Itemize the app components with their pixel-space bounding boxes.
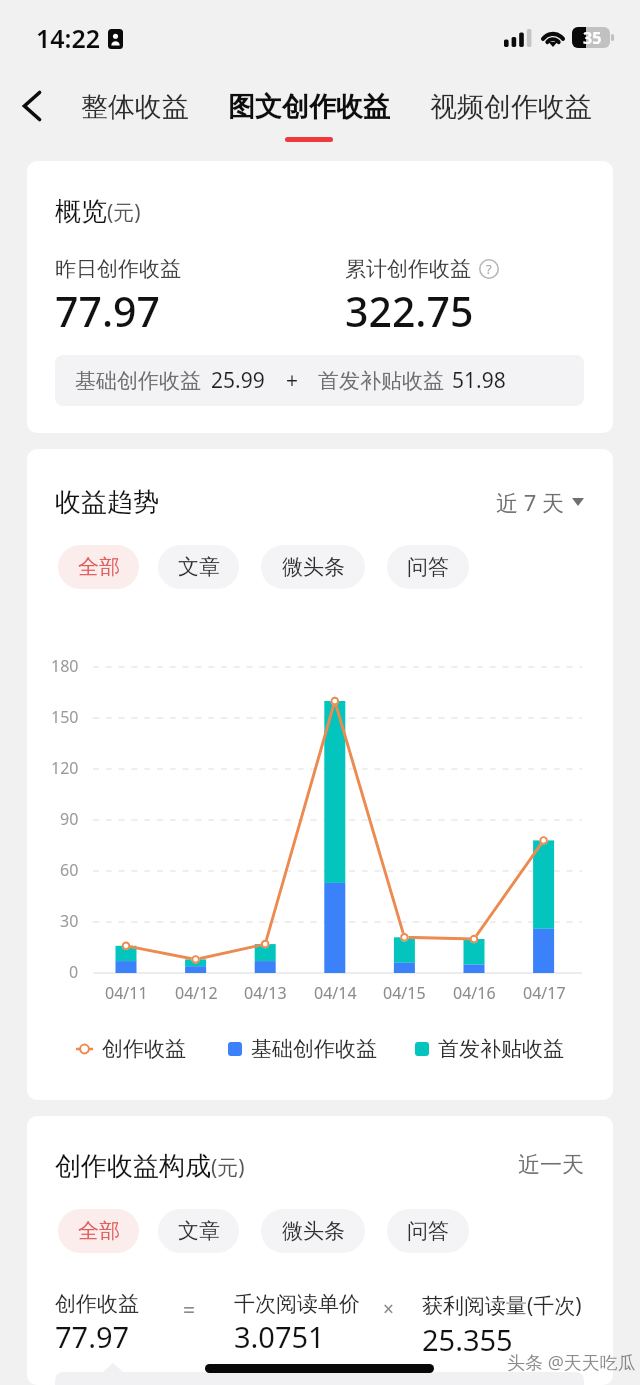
- staticText: 微头条: [282, 554, 345, 580]
- staticText: 问答: [407, 1218, 449, 1244]
- button[interactable]: 视频创作收益: [424, 90, 598, 124]
- staticText: 全部: [78, 1218, 120, 1244]
- staticText: 180: [51, 655, 79, 677]
- button[interactable]: 微头条: [261, 1209, 365, 1253]
- staticText: 概览: [55, 195, 107, 228]
- staticText: 04/12: [175, 982, 218, 1004]
- button[interactable]: 问答: [387, 545, 469, 589]
- staticText: 30: [60, 910, 79, 932]
- staticText: 文章: [178, 554, 220, 580]
- staticText: 首发补贴收益: [318, 368, 444, 394]
- button[interactable]: 基础创作收益: [55, 355, 584, 406]
- button[interactable]: 文章: [158, 1209, 239, 1253]
- staticText: (元): [211, 1153, 245, 1182]
- staticText: 150: [51, 706, 79, 728]
- button[interactable]: 全部: [58, 545, 139, 589]
- button[interactable]: 问答: [387, 1209, 469, 1253]
- button[interactable]: 全部: [58, 1209, 139, 1253]
- staticText: 35: [583, 27, 602, 48]
- staticText: 04/14: [314, 982, 357, 1004]
- staticText: 04/17: [523, 982, 566, 1004]
- staticText: 04/15: [383, 982, 426, 1004]
- staticText: 120: [51, 757, 79, 779]
- staticText: 收益趋势: [55, 486, 159, 519]
- button[interactable]: 说明: [479, 259, 499, 279]
- staticText: 77.97: [55, 283, 160, 339]
- staticText: 昨日创作收益: [55, 256, 181, 282]
- staticText: ×: [383, 1296, 394, 1322]
- staticText: 基础创作收益: [75, 368, 201, 394]
- staticText: 首发补贴收益: [438, 1036, 564, 1062]
- staticText: 322.75: [345, 283, 474, 339]
- button[interactable]: 微头条: [261, 545, 365, 589]
- staticText: 问答: [407, 554, 449, 580]
- staticText: 图文创作收益: [228, 90, 390, 124]
- staticText: 25.355: [422, 1320, 513, 1359]
- button[interactable]: 近一天: [518, 1147, 584, 1183]
- staticText: (元): [107, 198, 141, 227]
- staticText: 25.99: [211, 366, 265, 395]
- staticText: 头条 @天天吃瓜: [507, 1350, 636, 1375]
- staticText: +: [286, 366, 299, 395]
- button[interactable]: 整体收益: [75, 90, 195, 124]
- staticText: 77.97: [55, 1317, 130, 1356]
- staticText: 04/16: [453, 982, 496, 1004]
- staticText: 全部: [78, 554, 120, 580]
- staticText: 创作收益构成: [55, 1150, 211, 1183]
- staticText: 微头条: [282, 1218, 345, 1244]
- staticText: 0: [69, 961, 79, 983]
- staticText: 创作收益: [55, 1291, 139, 1317]
- staticText: 04/11: [105, 982, 148, 1004]
- staticText: 文章: [178, 1218, 220, 1244]
- staticText: 近 7 天: [496, 487, 565, 517]
- staticText: 基础创作收益: [251, 1036, 377, 1062]
- staticText: 千次阅读单价: [234, 1291, 360, 1317]
- staticText: 整体收益: [81, 90, 189, 124]
- button[interactable]: Back: [8, 84, 56, 128]
- button[interactable]: 近 7 天: [496, 483, 584, 521]
- staticText: 14:22: [36, 21, 101, 55]
- button[interactable]: 图文创作收益: [222, 90, 396, 142]
- staticText: 04/13: [244, 982, 287, 1004]
- staticText: 3.0751: [234, 1317, 325, 1356]
- staticText: 视频创作收益: [430, 90, 592, 124]
- staticText: 近一天: [518, 1151, 584, 1179]
- staticText: 51.98: [452, 366, 506, 395]
- staticText: 创作收益: [102, 1036, 186, 1062]
- staticText: =: [183, 1296, 196, 1325]
- staticText: 获利阅读量(千次): [422, 1291, 582, 1320]
- staticText: ?: [486, 260, 492, 278]
- staticText: 90: [60, 808, 79, 830]
- button[interactable]: 文章: [158, 545, 239, 589]
- staticText: 累计创作收益: [345, 256, 471, 282]
- staticText: 60: [60, 859, 79, 881]
